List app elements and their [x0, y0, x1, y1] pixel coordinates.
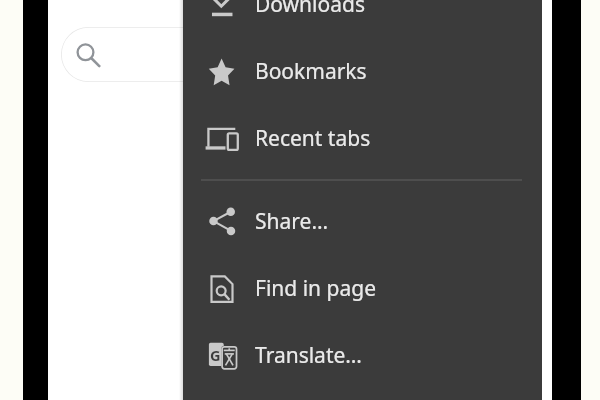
staticText: Bookmarks	[255, 57, 367, 86]
staticText: G	[210, 345, 221, 365]
staticText: Downloads	[255, 0, 365, 19]
staticText: Translate…	[255, 341, 362, 370]
staticText: Find in page	[255, 274, 376, 303]
button[interactable]: Recent tabs	[183, 105, 542, 172]
button[interactable]: Share…	[183, 188, 542, 255]
staticText: Share…	[255, 207, 328, 236]
button[interactable]: G	[183, 322, 542, 389]
button[interactable]: Search	[61, 27, 291, 82]
button[interactable]: Find in page	[183, 255, 542, 322]
button[interactable]: Downloads	[183, 0, 542, 38]
staticText: Recent tabs	[255, 124, 371, 153]
button[interactable]: Bookmarks	[183, 38, 542, 105]
